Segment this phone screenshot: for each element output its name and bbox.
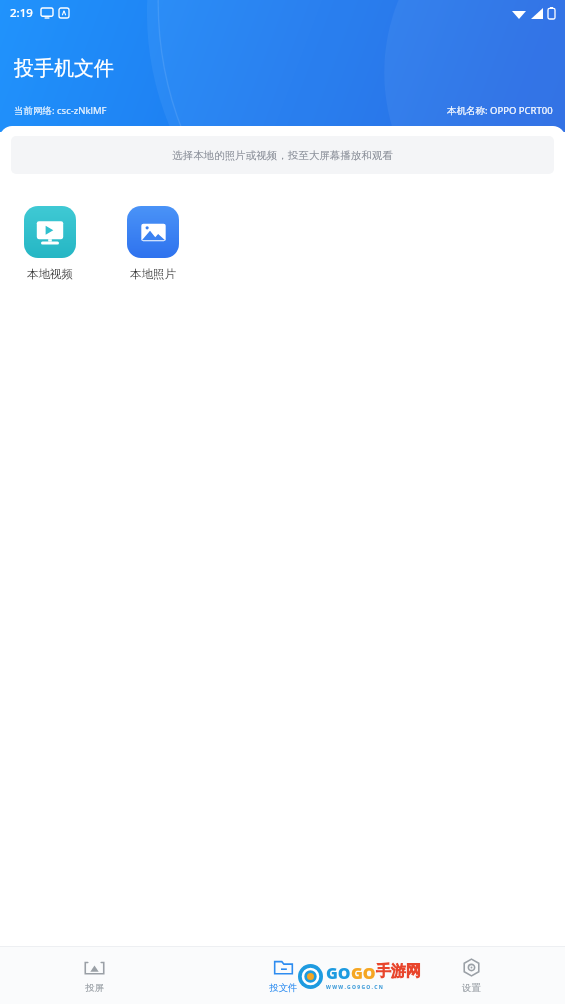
staticText: 投屏 <box>85 982 104 994</box>
other: 投文件 <box>273 957 294 978</box>
button[interactable]: 投文件 <box>189 947 377 1004</box>
staticText: 本地照片 <box>130 267 176 281</box>
button[interactable]: 投屏 <box>0 947 189 1004</box>
staticText: 本机名称: OPPO PCRT00 <box>447 104 553 117</box>
staticText: 手游网 <box>376 962 421 981</box>
staticText: 选择本地的照片或视频，投至大屏幕播放和观看 <box>172 149 393 162</box>
other: 投屏 <box>84 957 105 978</box>
button[interactable]: 本地照片 <box>125 206 181 281</box>
staticText: GO <box>351 962 376 984</box>
button[interactable]: 设置 <box>377 947 565 1004</box>
staticText: 当前网络: csc-zNklMF <box>14 104 107 117</box>
other: 设置 <box>461 957 482 978</box>
staticText: W W W . G O 9 G O . C N <box>326 984 383 991</box>
staticText: 投手机文件 <box>14 56 114 81</box>
staticText: 本地视频 <box>27 267 73 281</box>
staticText: 设置 <box>462 982 481 994</box>
staticText: GO <box>326 962 351 984</box>
staticText: 2:19 <box>10 5 33 21</box>
staticText: 投文件 <box>269 982 298 994</box>
button[interactable]: 本地视频 <box>22 206 78 281</box>
